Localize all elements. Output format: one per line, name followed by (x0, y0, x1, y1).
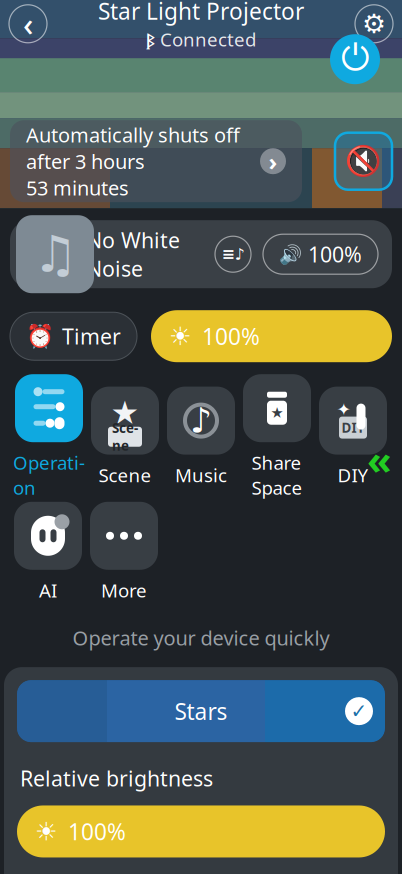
staticText: › (268, 145, 277, 177)
staticText: « (367, 432, 392, 485)
button[interactable]: Mute device sound (335, 133, 392, 190)
staticText: 100% (68, 816, 126, 846)
button[interactable]: More (86, 502, 162, 603)
staticText: Music (175, 463, 227, 487)
staticText: ⏻ (341, 42, 369, 77)
staticText: ⚙ (362, 9, 386, 39)
button[interactable]: ✦ (315, 387, 391, 487)
staticText: DIY (337, 463, 368, 487)
staticText: Scene (112, 419, 138, 454)
staticText: Star Light Projector (98, 0, 304, 26)
button[interactable]: Collapse (367, 432, 392, 485)
button[interactable]: Stars (17, 680, 385, 742)
staticText: ‹ (23, 2, 33, 45)
staticText: AI (39, 578, 57, 603)
staticText: Scene (98, 463, 151, 487)
staticText: ★ (270, 404, 283, 421)
staticText: 🔇 (345, 144, 382, 178)
staticText: Operate your device quickly (72, 625, 329, 651)
staticText: Relative brightness (20, 764, 213, 792)
button[interactable]: ☀ (151, 310, 392, 362)
staticText: ☀ (169, 322, 192, 351)
button[interactable]: Automatically shuts off after 3 hours 53… (10, 120, 302, 202)
staticText: Share Space (251, 450, 302, 500)
staticText: Automatically shuts off after 3 hours 53… (26, 121, 240, 201)
staticText: ★ (110, 394, 139, 431)
staticText: ≡♪ (221, 245, 244, 263)
staticText: ☀ (35, 817, 58, 846)
button[interactable]: ★ (87, 387, 163, 487)
staticText: ♫ (32, 225, 77, 283)
button[interactable]: ⏰ (10, 312, 137, 360)
button[interactable]: Operation (11, 374, 87, 500)
staticText: Operation (13, 450, 85, 500)
button[interactable]: Power (330, 34, 380, 84)
button[interactable]: Back (9, 2, 47, 45)
button[interactable]: ☀ (17, 805, 385, 857)
staticText: ✓ (350, 700, 367, 722)
button[interactable]: Settings (355, 5, 393, 43)
staticText: ✦ (336, 400, 351, 419)
staticText: 100% (202, 321, 260, 351)
staticText: ♪ (190, 401, 212, 440)
button[interactable]: AI (10, 502, 86, 603)
staticText: ⏰ (26, 323, 54, 349)
staticText: DIY (341, 419, 364, 436)
staticText: Connected (160, 27, 256, 52)
staticText: Timer (62, 322, 121, 350)
button[interactable]: ♪ (163, 387, 239, 487)
staticText: 🔊 (279, 243, 302, 265)
staticText: More (101, 578, 147, 603)
staticText: No White Noise (86, 226, 180, 283)
staticText: ᛒ (146, 28, 155, 50)
staticText: 100% (308, 240, 362, 268)
button[interactable]: White noise list (215, 236, 251, 272)
button[interactable]: ★ (239, 374, 315, 500)
button[interactable]: 🔊 (263, 234, 378, 274)
staticText: Stars (174, 696, 227, 726)
